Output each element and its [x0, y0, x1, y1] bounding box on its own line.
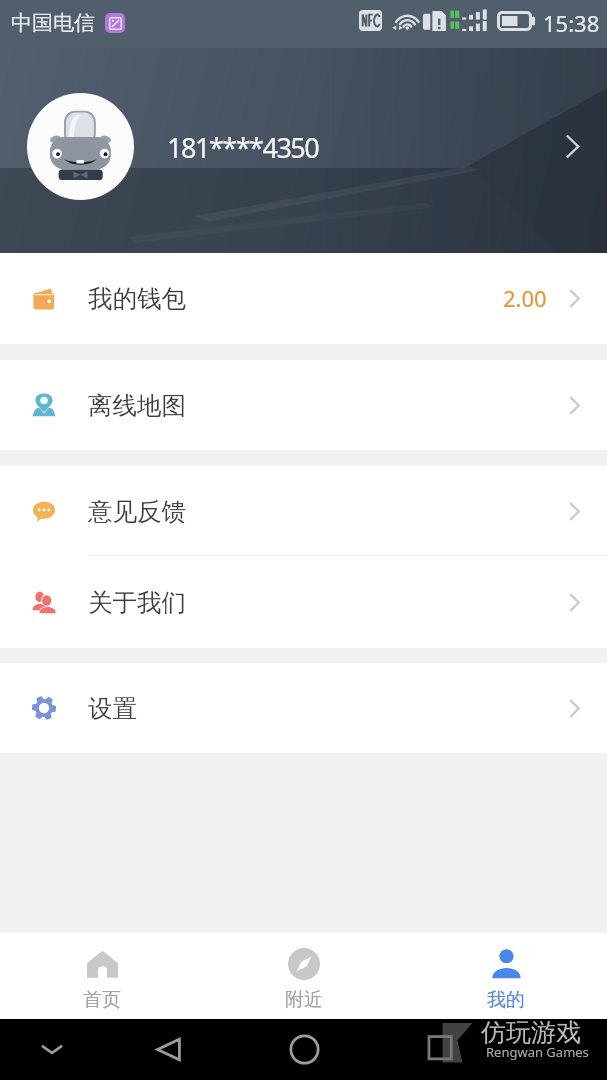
staticText: 181****4350 [167, 129, 319, 166]
staticText: 我的 [487, 988, 525, 1012]
button[interactable]: 我的 [405, 933, 607, 1019]
staticText: 我的钱包 [88, 283, 186, 314]
button[interactable]: 离线地图 [0, 360, 607, 450]
button[interactable]: 附近 [203, 933, 405, 1019]
staticText: 首页 [83, 988, 121, 1012]
button[interactable]: 首页 [0, 933, 203, 1019]
button[interactable]: 关于我们 [0, 556, 607, 648]
staticText: 2.00 [503, 283, 547, 313]
button[interactable]: 设置 [0, 663, 607, 753]
staticText: 中国电信 [11, 10, 95, 36]
staticText: Rengwan Games [486, 1043, 589, 1061]
staticText: 关于我们 [88, 587, 186, 618]
button[interactable]: Back [145, 1025, 193, 1073]
button[interactable]: 意见反馈 [0, 466, 607, 556]
staticText: 设置 [88, 693, 137, 724]
staticText: 仿玩游戏 [481, 1017, 581, 1048]
staticText: 离线地图 [88, 390, 186, 421]
staticText: 意见反馈 [88, 496, 186, 527]
staticText: 15:38 [543, 8, 600, 38]
button[interactable]: Hide keyboard [28, 1027, 76, 1072]
button[interactable]: 181****4350 [0, 48, 607, 253]
staticText: 附近 [285, 988, 323, 1012]
button[interactable]: 我的钱包 [0, 253, 607, 344]
button[interactable]: Home [280, 1025, 328, 1073]
